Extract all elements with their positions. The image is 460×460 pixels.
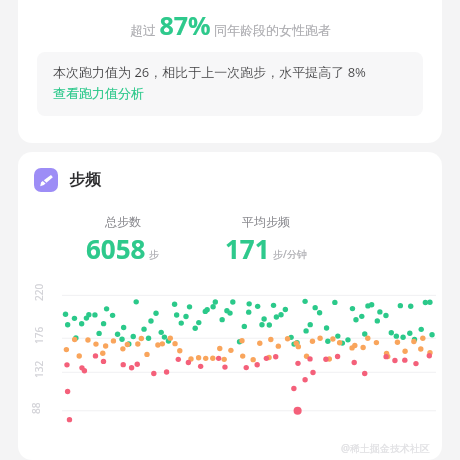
staticText: 本次跑力值为 26，相比于上一次跑步，水平提高了 8% bbox=[53, 63, 366, 81]
staticText: 176 bbox=[32, 326, 46, 344]
staticText: 88 bbox=[29, 402, 43, 414]
staticText: 步/分钟 bbox=[273, 247, 307, 261]
staticText: 171 bbox=[225, 231, 270, 266]
staticText: 6058 bbox=[86, 231, 146, 266]
button[interactable]: 步频 bbox=[34, 168, 101, 192]
staticText: 总步数 bbox=[105, 214, 141, 229]
staticText: 平均步频 bbox=[242, 214, 290, 229]
staticText: 查看跑力值分析 bbox=[53, 85, 144, 101]
staticText: 132 bbox=[32, 360, 46, 378]
staticText: 220 bbox=[32, 283, 46, 301]
staticText: 超过 87% 同年龄段的女性跑者 bbox=[130, 8, 331, 42]
staticText: 步频 bbox=[69, 170, 101, 190]
button[interactable]: 本次跑力值为 26，相比于上一次跑步，水平提高了 8% bbox=[37, 52, 423, 116]
staticText: @稀土掘金技术社区 bbox=[341, 441, 430, 455]
staticText: 步 bbox=[149, 248, 159, 261]
other: 步频 bbox=[34, 168, 58, 192]
